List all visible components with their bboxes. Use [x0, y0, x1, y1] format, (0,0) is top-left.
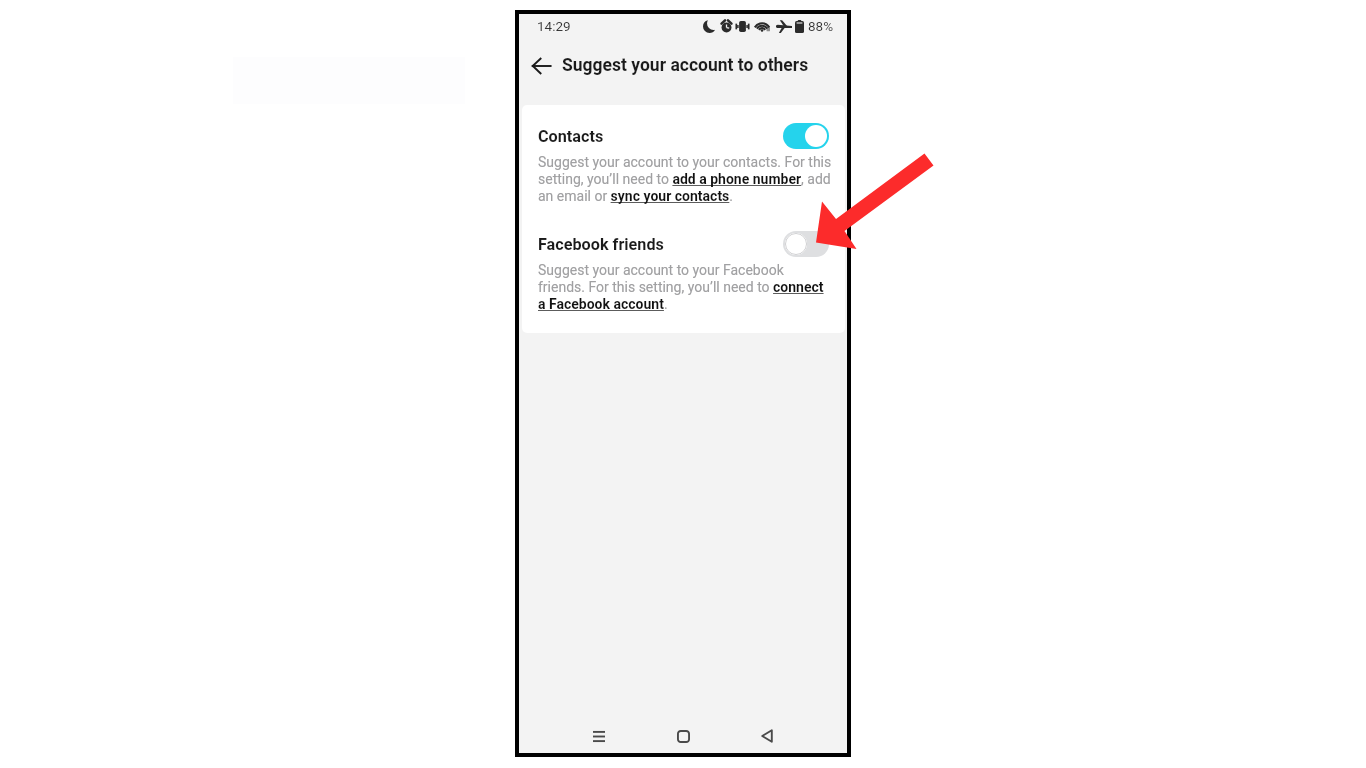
staticText: Suggest your account to others: [562, 55, 809, 76]
button[interactable]: Facebook friends: [522, 231, 845, 313]
button[interactable]: Home: [665, 718, 701, 754]
button[interactable]: Switch on: [783, 123, 829, 149]
button[interactable]: Back: [527, 52, 555, 80]
staticText: Contacts: [538, 127, 604, 146]
button[interactable]: Recent apps: [581, 718, 617, 754]
button[interactable]: Switch off: [783, 231, 829, 257]
staticText: 88%: [808, 18, 834, 34]
staticText: 14:29: [537, 18, 571, 34]
staticText: Suggest your account to your Facebook fr…: [538, 262, 834, 313]
staticText: Facebook friends: [538, 235, 664, 254]
staticText: Suggest your account to your contacts. F…: [538, 154, 834, 205]
button[interactable]: Contacts: [522, 123, 845, 205]
button[interactable]: Back: [749, 718, 785, 754]
